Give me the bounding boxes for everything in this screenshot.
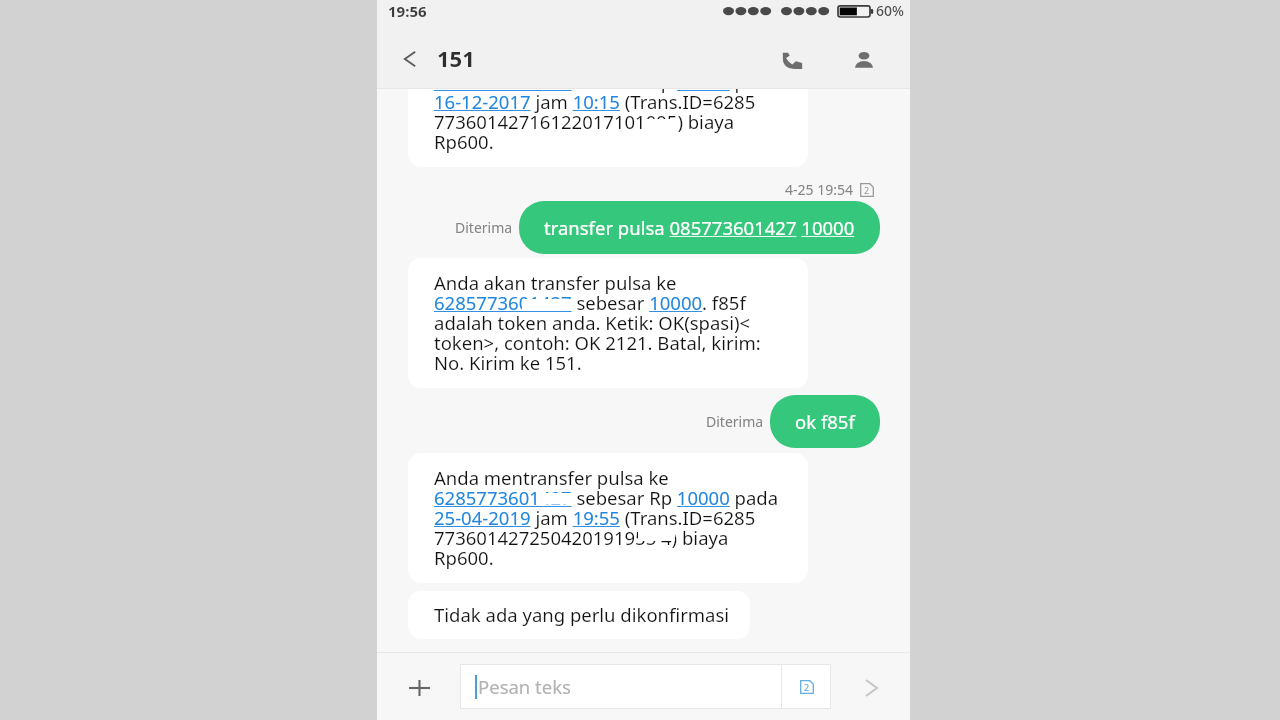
button[interactable]: Anda akan transfer pulsa ke 628577360142… [408,258,808,388]
staticText: Anda akan transfer pulsa ke 628577360142… [434,270,761,375]
button[interactable]: ok f85f [770,395,880,448]
button[interactable]: Contact details [842,38,886,82]
button[interactable]: Call [770,38,814,82]
staticText: 60% [876,1,904,20]
staticText: Pesan teks [478,674,571,699]
staticText: 2 [864,184,870,196]
button[interactable]: transfer pulsa 085773601427 10000 [519,201,880,254]
staticText: 151 [437,43,475,73]
button[interactable]: Back [389,38,431,80]
button[interactable]: Add attachment [398,667,440,709]
button[interactable]: Send [850,667,892,709]
button[interactable]: Anda mentransfer pulsa ke 6285773601427 … [408,89,808,167]
button[interactable]: Pesan teks [460,664,831,709]
button[interactable]: SIM 2 [782,664,831,709]
staticText: Tidak ada yang perlu dikonfirmasi [434,602,730,627]
button[interactable]: Tidak ada yang perlu dikonfirmasi [408,591,750,639]
staticText: Diterima [706,412,764,431]
staticText: ok f85f [795,409,855,434]
staticText: 2 [804,681,810,693]
staticText: Anda mentransfer pulsa ke 6285773601427 … [434,89,779,154]
staticText: 4-25 19:54 [785,180,853,199]
button[interactable]: Anda mentransfer pulsa ke 6285773601427 … [408,453,808,583]
staticText: transfer pulsa 085773601427 10000 [544,215,855,240]
staticText: Anda mentransfer pulsa ke 6285773601427 … [434,465,779,570]
staticText: Diterima [455,218,513,237]
staticText: 19:56 [388,1,427,21]
